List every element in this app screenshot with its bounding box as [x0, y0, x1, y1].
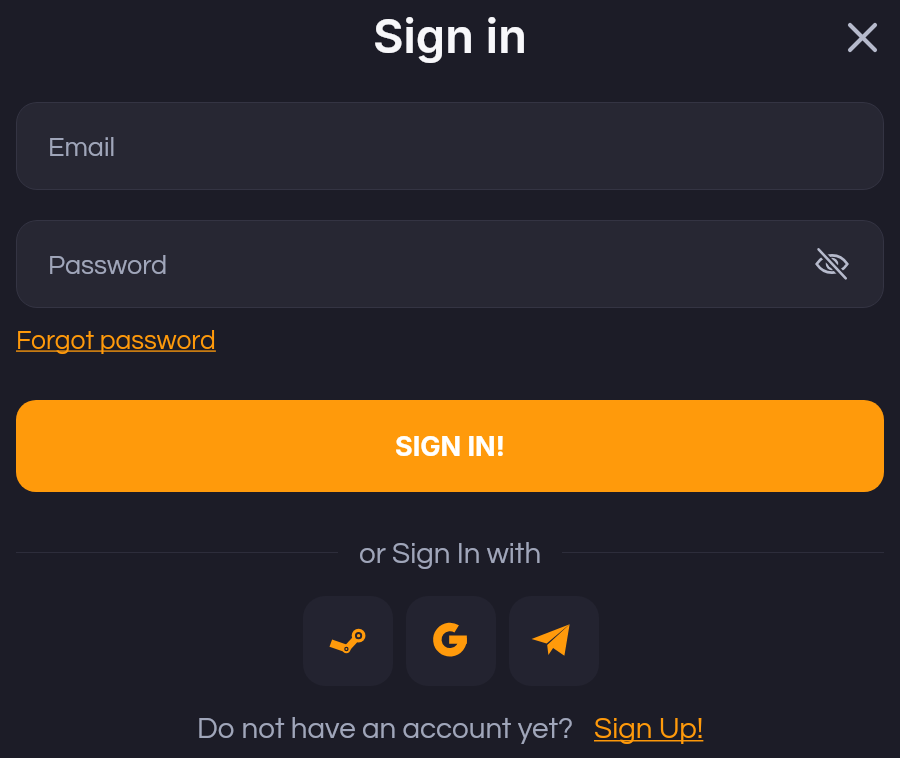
staticText: Email	[48, 134, 115, 162]
button[interactable]: Password	[16, 220, 884, 308]
staticText: Sign in	[373, 7, 527, 64]
button[interactable]: Show password	[808, 240, 856, 288]
staticText: SIGN IN!	[395, 430, 505, 463]
staticText: Password	[48, 252, 168, 280]
button[interactable]: SIGN IN!	[16, 400, 884, 492]
button[interactable]: Sign in with Telegram	[509, 596, 599, 686]
staticText: or Sign In with	[359, 539, 542, 569]
staticText: Forgot password	[16, 327, 216, 354]
staticText: Do not have an account yet?	[197, 714, 574, 744]
button[interactable]: Sign Up!	[594, 714, 704, 744]
staticText: Sign Up!	[594, 714, 704, 744]
button[interactable]: Sign in with Google	[406, 596, 496, 686]
button[interactable]: Close	[838, 13, 886, 61]
button[interactable]: Email	[16, 102, 884, 190]
button[interactable]: Sign in with Steam	[303, 596, 393, 686]
button[interactable]: Forgot password	[16, 327, 216, 354]
